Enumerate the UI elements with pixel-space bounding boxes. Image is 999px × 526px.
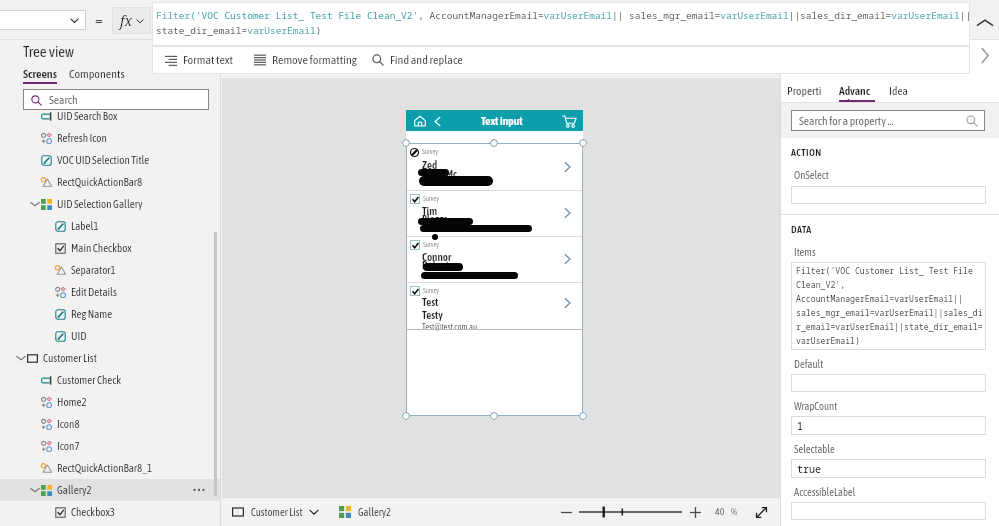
staticText: Mc [446, 168, 457, 180]
staticText: Search for a property ... [799, 114, 894, 127]
staticText: DATA [791, 224, 812, 235]
button[interactable]: Zoom slider [579, 504, 682, 520]
button[interactable]: RectQuickActionBar8_1 [0, 457, 221, 479]
button[interactable]: Format text [160, 47, 239, 73]
staticText: Advanced [839, 84, 875, 108]
staticText: Checkbox3 [71, 506, 116, 519]
button[interactable]: Survey [406, 145, 583, 191]
button[interactable]: Customer Check [0, 369, 221, 391]
button[interactable]: Zoom in [687, 504, 703, 520]
button[interactable]: Survey [406, 191, 583, 237]
staticText: Properties [787, 84, 825, 108]
button[interactable] [791, 186, 986, 204]
staticText: Ideas [889, 84, 911, 108]
staticText: Testy [422, 309, 443, 322]
staticText: Customer List [43, 352, 97, 365]
staticText: Edit Details [71, 286, 117, 299]
button[interactable] [410, 286, 420, 296]
staticText: Home2 [57, 396, 87, 409]
button[interactable]: RectQuickActionBar8 [0, 171, 221, 193]
button[interactable]: Fit to screen [752, 503, 770, 521]
button[interactable]: Home [412, 113, 428, 129]
button[interactable]: Gallery2 [339, 506, 392, 518]
button[interactable]: Components [69, 66, 125, 80]
staticText: % [731, 506, 738, 517]
button[interactable]: Search for a property ... [791, 110, 985, 131]
staticText: Text input [481, 114, 523, 127]
button[interactable]: Ideas [889, 78, 911, 102]
button[interactable] [410, 194, 420, 204]
button[interactable]: Survey [406, 237, 583, 283]
button[interactable]: Find and replace [367, 47, 468, 73]
button[interactable]: VOC UID Selection Title [0, 149, 221, 171]
button[interactable]: Label1 [0, 215, 221, 237]
staticText: state_dir_email=varUserEmail) [156, 24, 322, 37]
button[interactable]: Refresh Icon [0, 127, 221, 149]
button[interactable]: UID Selection Gallery [0, 193, 221, 215]
staticText: Icon8 [57, 418, 80, 431]
button[interactable]: Shopping cart [560, 112, 578, 130]
staticText: Tree view [23, 43, 74, 60]
button[interactable]: Main Checkbox [0, 237, 221, 259]
button[interactable] [410, 240, 420, 250]
staticText: Refresh Icon [57, 132, 107, 145]
button[interactable]: Checkbox3 [0, 501, 221, 523]
staticText: Label1 [71, 220, 99, 233]
button[interactable]: More options [189, 480, 209, 500]
button[interactable]: Properties [787, 78, 825, 102]
staticText: Items [794, 246, 816, 258]
button[interactable]: Screens [23, 66, 57, 80]
staticText: Icon7 [57, 440, 80, 453]
staticText: UID Selection Gallery [57, 198, 143, 211]
staticText: Customer Check [57, 374, 122, 387]
staticText: Search [49, 93, 78, 106]
button[interactable]: Reg Name [0, 303, 221, 325]
button[interactable]: UID Search Box [0, 105, 221, 127]
staticText: Connor [422, 251, 452, 264]
button[interactable] [0, 10, 86, 30]
staticText: Gallery2 [358, 506, 392, 518]
button[interactable]: Survey [406, 283, 583, 329]
staticText: OnSelect [794, 169, 829, 181]
staticText: Reg Name [71, 308, 113, 321]
button[interactable]: Icon7 [0, 435, 221, 457]
button[interactable]: Gallery2 [0, 479, 221, 501]
staticText: Tim [422, 205, 438, 218]
staticText: Test@test.com.au [422, 322, 478, 332]
button[interactable]: Advanced [839, 78, 875, 102]
button[interactable]: Search [23, 89, 209, 110]
button[interactable]: 1 [791, 416, 986, 435]
staticText: Customer List [251, 506, 303, 518]
button[interactable]: true [791, 459, 986, 478]
staticText: Format text [183, 53, 234, 67]
staticText: Survey [423, 195, 439, 202]
staticText: Gallery2 [57, 484, 92, 497]
button[interactable]: Expand [970, 41, 999, 69]
button[interactable]: Customer List [0, 347, 221, 369]
staticText: Selectable [794, 443, 835, 455]
staticText: Survey [423, 241, 439, 248]
button[interactable]: Icon8 [0, 413, 221, 435]
button[interactable]: Customer List [232, 506, 319, 518]
button[interactable]: Back [430, 114, 444, 128]
staticText: UID Search Box [57, 110, 118, 123]
button[interactable]: Remove formatting [249, 47, 362, 73]
button[interactable]: UID [0, 325, 221, 347]
staticText: 40 [715, 506, 725, 517]
button[interactable]: Separator1 [0, 259, 221, 281]
button[interactable] [791, 374, 986, 392]
staticText: Filter('VOC Customer List_ Test File Cle… [796, 265, 983, 347]
button[interactable]: Edit Details [0, 281, 221, 303]
staticText: fx [120, 11, 133, 30]
button[interactable] [791, 502, 986, 520]
staticText: 1 [797, 419, 803, 433]
staticText: Find and replace [390, 53, 463, 67]
button[interactable] [410, 148, 419, 157]
staticText: Filter('VOC Customer List_ Test File Cle… [156, 9, 972, 22]
button[interactable]: Filter('VOC Customer List_ Test File Cle… [791, 262, 986, 350]
button[interactable]: fx [112, 7, 151, 34]
button[interactable]: Home2 [0, 391, 221, 413]
button[interactable]: Collapse formula bar [970, 6, 999, 40]
button[interactable]: Zoom out [558, 504, 574, 520]
